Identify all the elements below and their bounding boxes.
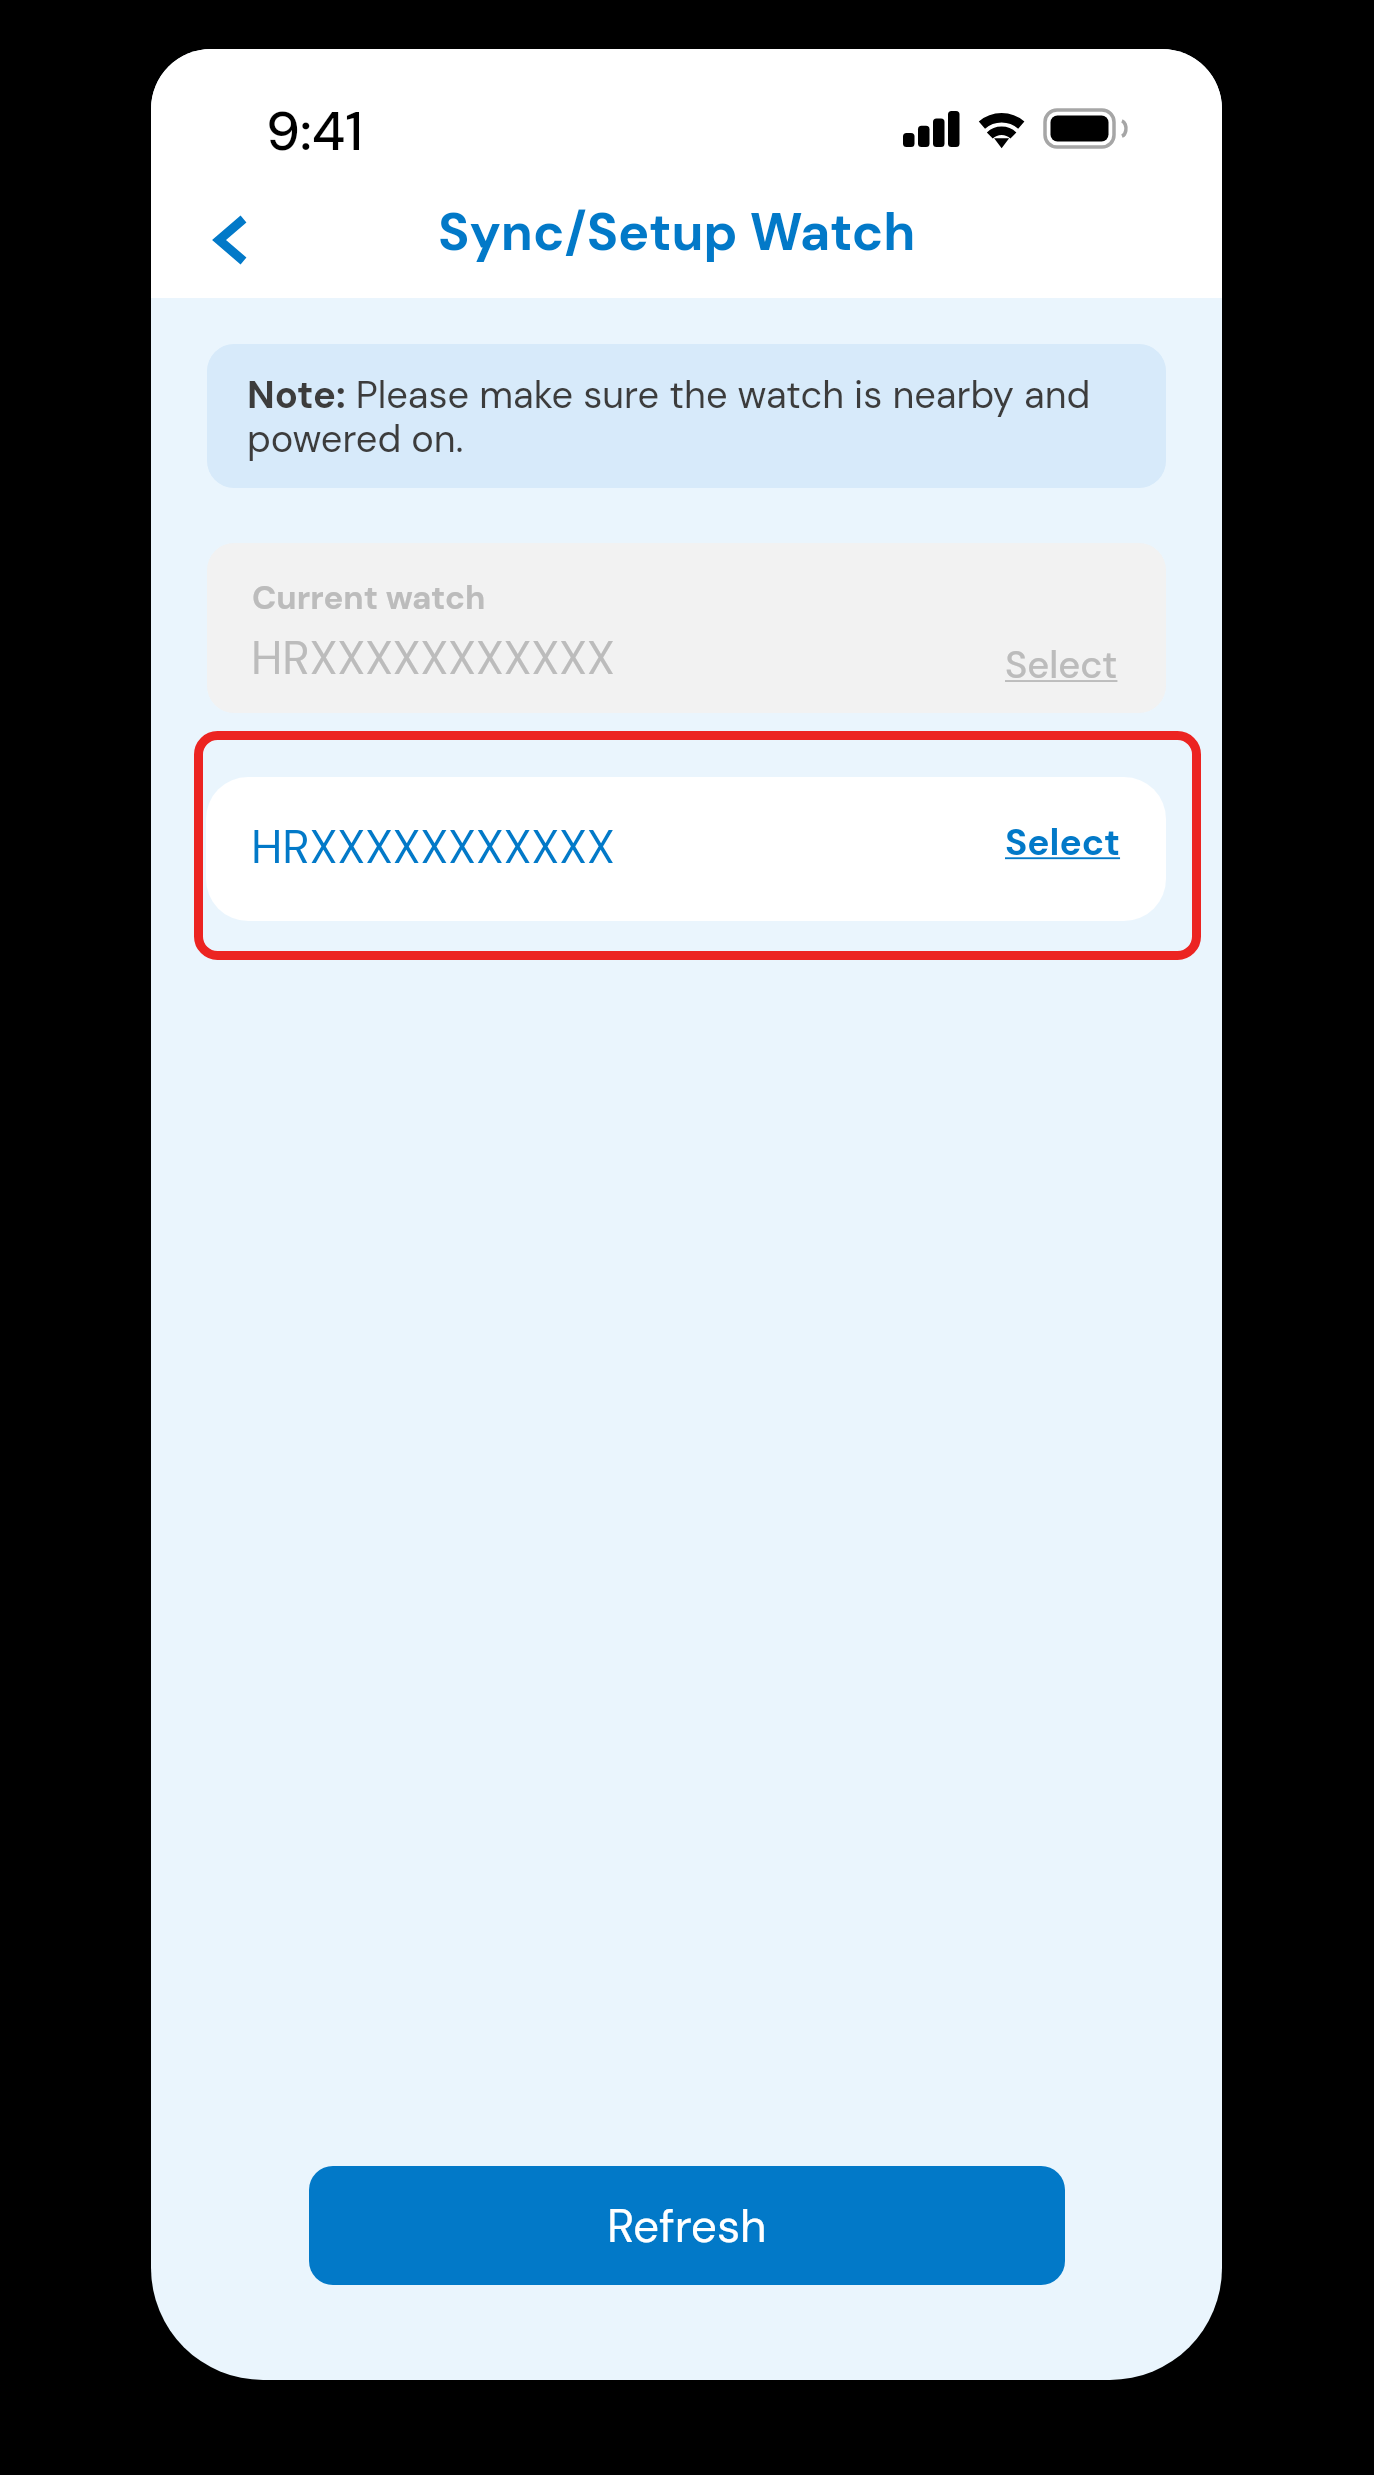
staticText: 9:41: [266, 96, 364, 166]
staticText: HRXXXXXXXXXXX: [251, 628, 615, 688]
button[interactable]: Select: [1005, 640, 1118, 689]
button[interactable]: Select: [1005, 818, 1121, 866]
staticText: Select: [1005, 640, 1118, 689]
staticText: HRXXXXXXXXXXX: [251, 817, 615, 877]
button[interactable]: Current watch: [207, 543, 1166, 713]
button[interactable]: HRXXXXXXXXXXX: [206, 777, 1166, 921]
staticText: Select: [1005, 818, 1121, 866]
staticText: Note: Please make sure the watch is near…: [247, 370, 1117, 463]
button[interactable]: Back: [179, 192, 275, 288]
staticText: Refresh: [607, 2196, 767, 2256]
staticText: Current watch: [252, 576, 486, 619]
button[interactable]: Refresh: [309, 2166, 1065, 2285]
staticText: Sync/Setup Watch: [438, 198, 916, 266]
